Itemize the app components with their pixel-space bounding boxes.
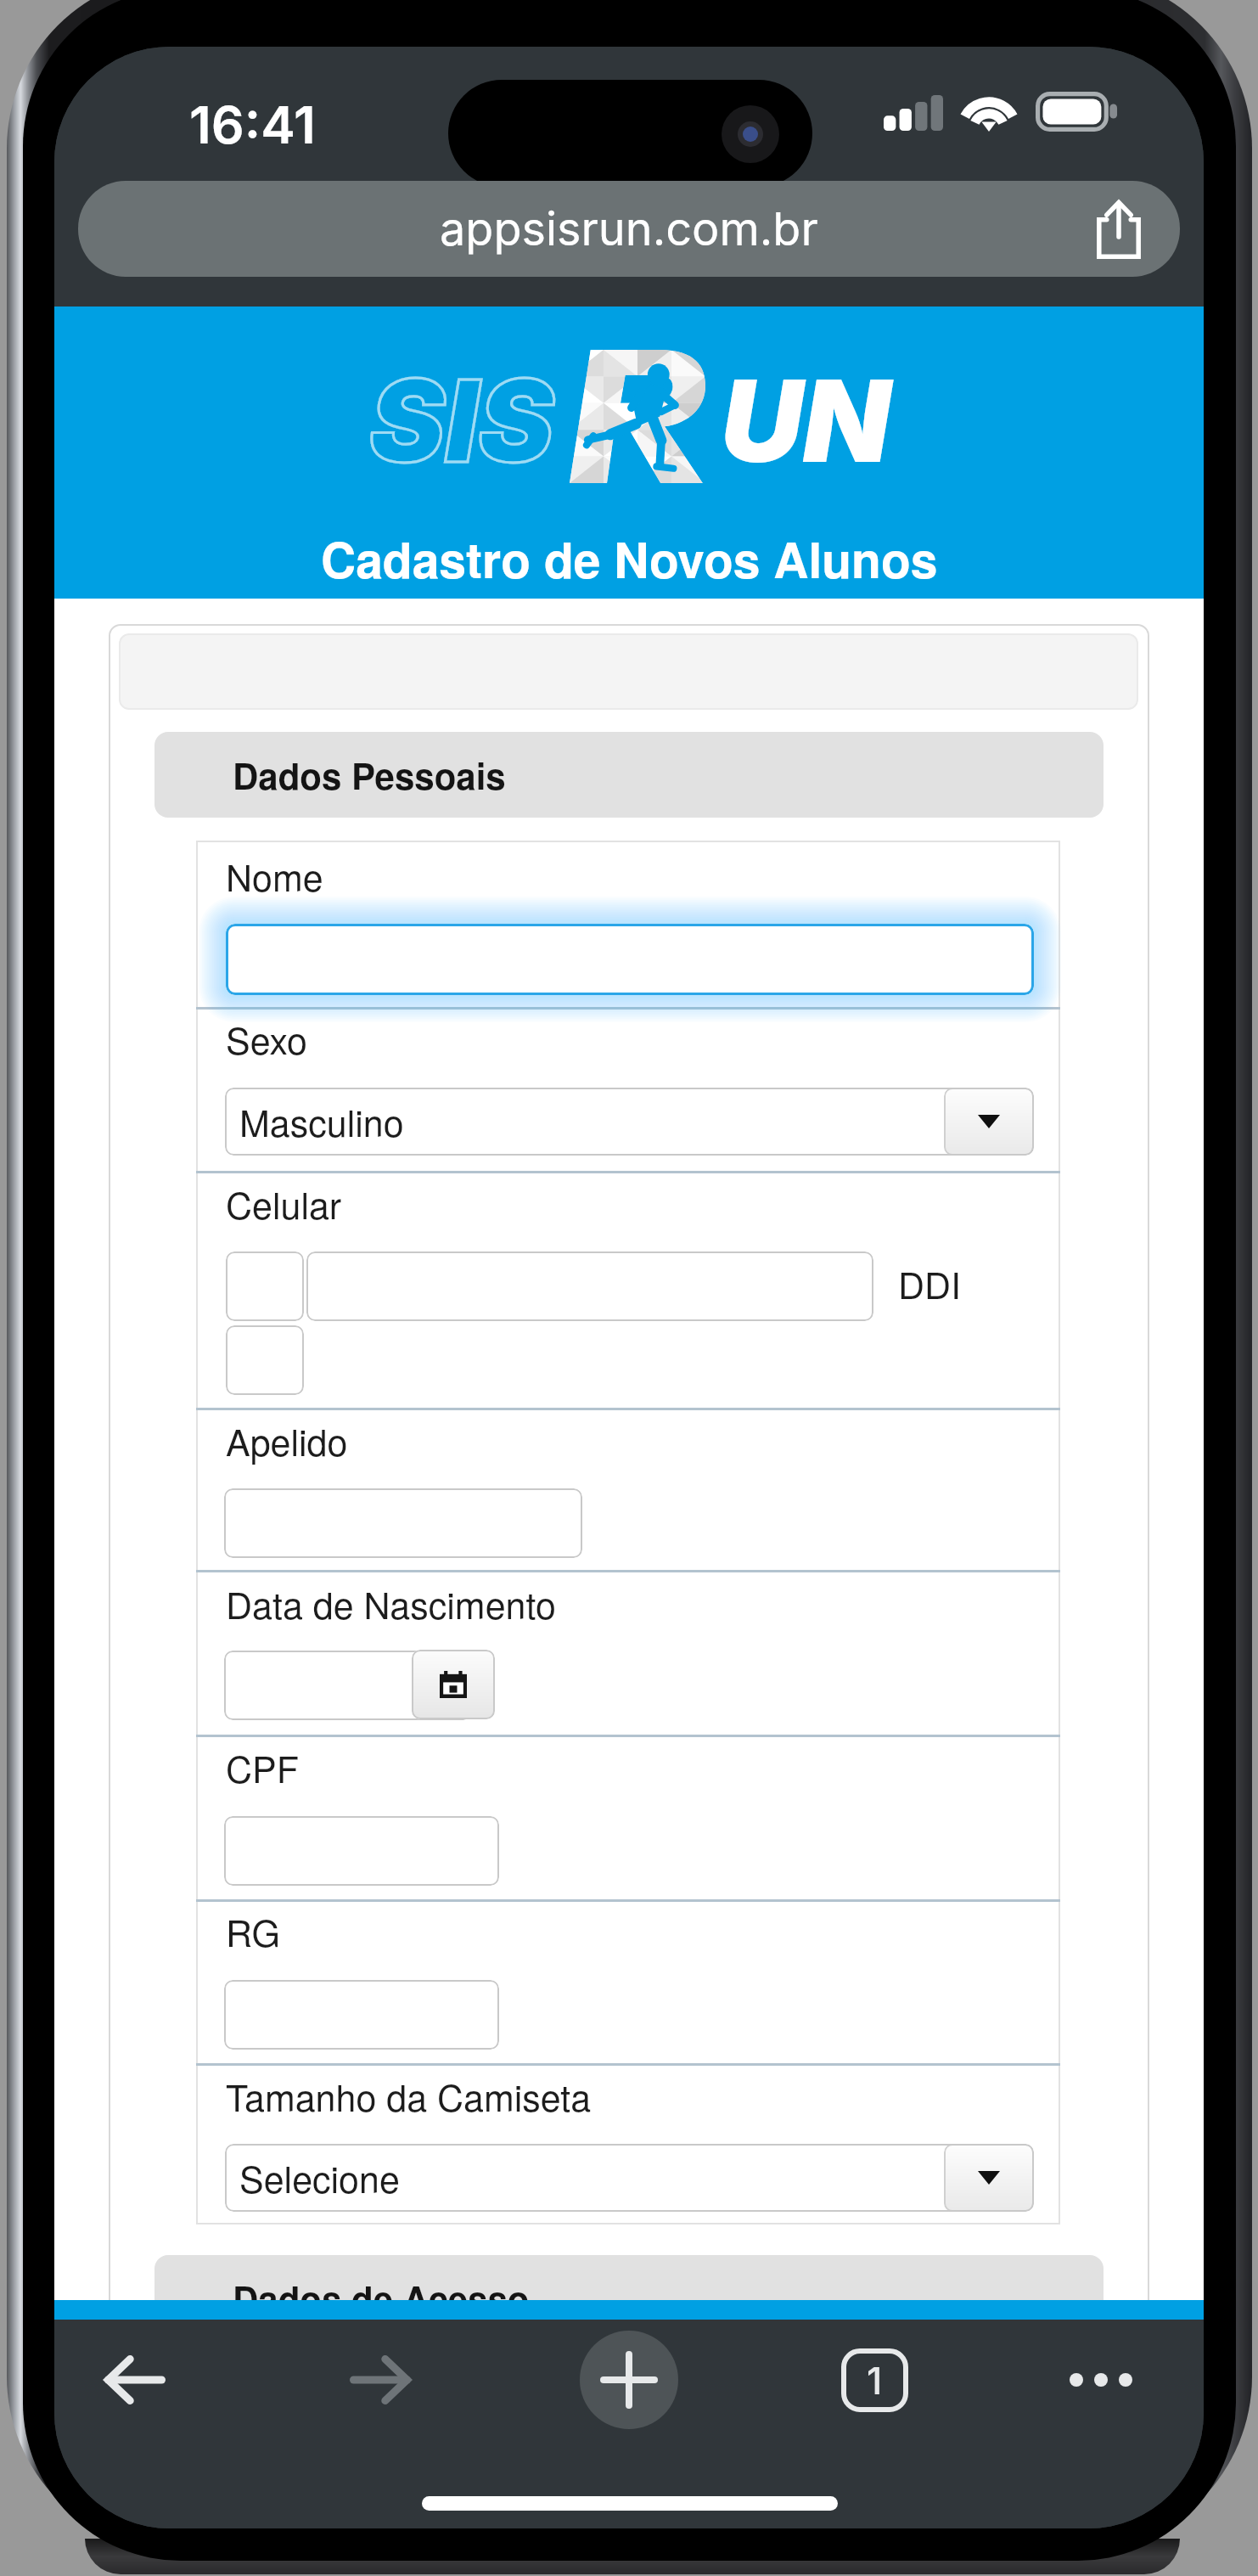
staticText: Dados Pessoais <box>233 750 506 801</box>
button[interactable]: Avancar <box>333 2332 428 2427</box>
staticText: appsisrun.com.br <box>440 201 818 256</box>
button[interactable]: Escolher data <box>412 1650 495 1719</box>
button[interactable]: Selecione <box>225 2144 1034 2212</box>
button[interactable]: Nova aba <box>580 2331 678 2429</box>
button[interactable]: Voltar <box>87 2332 183 2427</box>
staticText: Sexo <box>226 1013 307 1066</box>
button[interactable]: Share <box>1085 195 1153 263</box>
button[interactable] <box>224 1651 472 1720</box>
button[interactable] <box>306 1251 873 1321</box>
staticText: Data de Nascimento <box>226 1578 556 1630</box>
staticText: DDI <box>898 1257 962 1310</box>
staticText: UN <box>721 352 890 489</box>
staticText: Cadastro de Novos Alunos <box>321 524 938 593</box>
staticText: Celular <box>226 1178 342 1230</box>
staticText: Selecione <box>239 2151 400 2204</box>
button[interactable] <box>226 1325 304 1395</box>
button[interactable] <box>224 1816 499 1886</box>
staticText: Apelido <box>226 1415 348 1467</box>
staticText: Tamanho da Camiseta <box>226 2070 592 2123</box>
staticText: RG <box>226 1905 280 1958</box>
button[interactable]: Mais <box>1054 2333 1148 2427</box>
button[interactable] <box>224 1488 582 1558</box>
staticText: Nome <box>226 850 323 903</box>
staticText: Dados de Acesso <box>233 2273 530 2324</box>
staticText: Masculino <box>239 1095 404 1148</box>
staticText: 16:41 <box>189 93 316 156</box>
button[interactable]: Masculino <box>225 1088 1034 1156</box>
button[interactable] <box>226 1251 304 1321</box>
button[interactable] <box>224 1980 499 2050</box>
button[interactable]: Dados Pessoais <box>154 732 1104 818</box>
button[interactable]: appsisrun.com.br <box>78 181 1180 277</box>
staticText: CPF <box>226 1741 299 1794</box>
staticText: SIS <box>369 352 554 489</box>
button[interactable]: Dados de Acesso <box>154 2255 1104 2341</box>
button[interactable] <box>226 924 1034 995</box>
staticText: 1 <box>867 2358 883 2403</box>
button[interactable]: Abas <box>834 2339 915 2421</box>
